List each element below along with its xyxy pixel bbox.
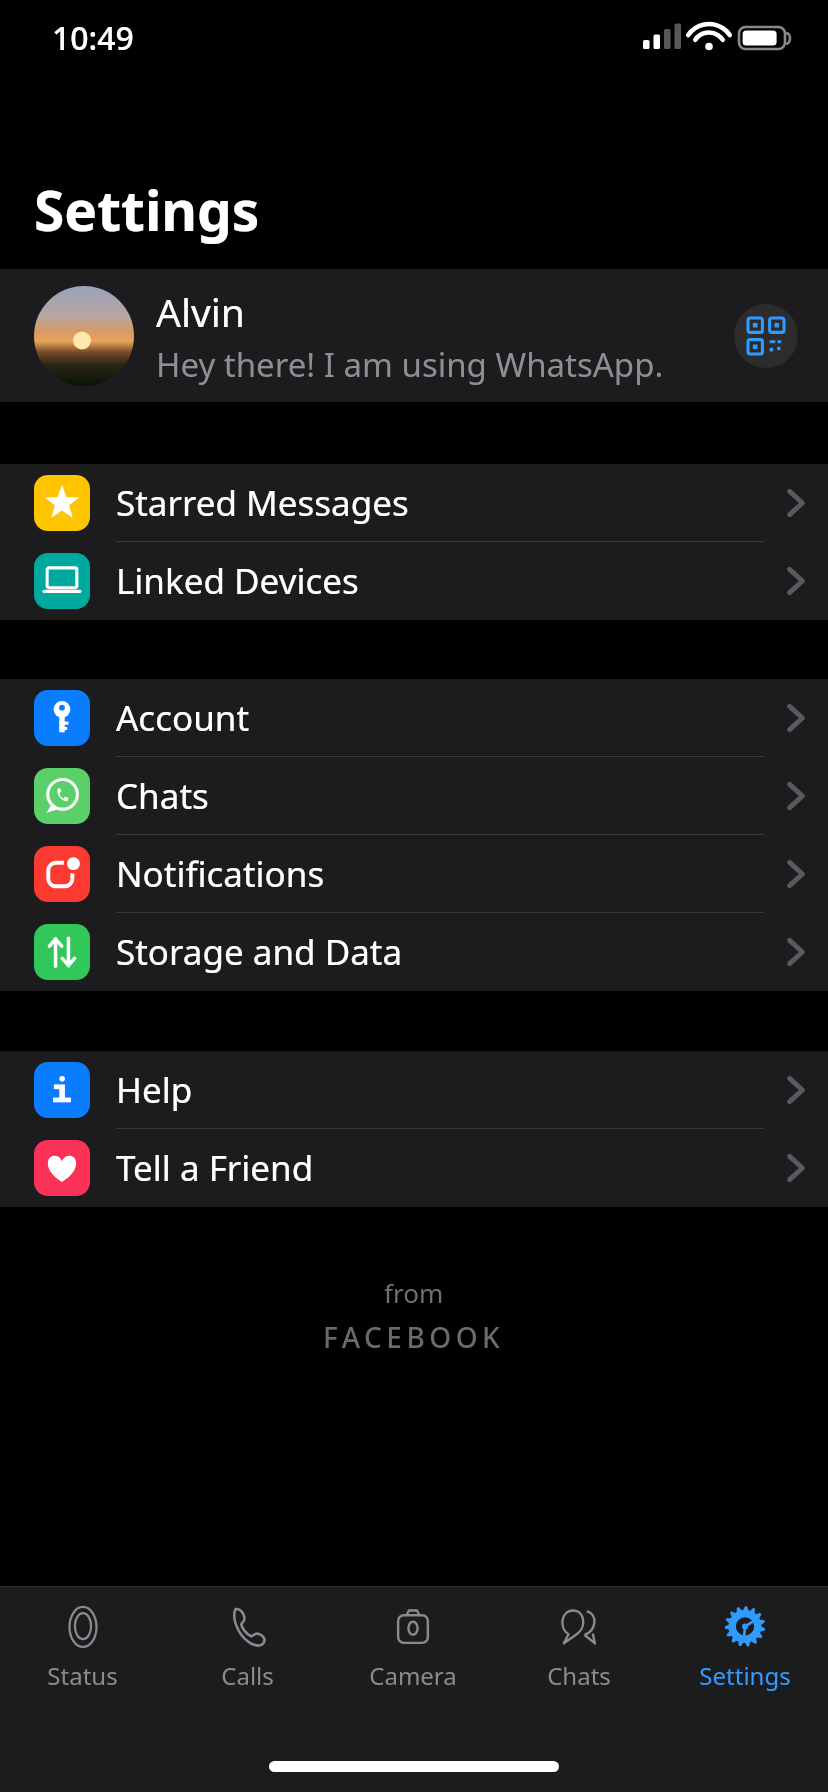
button[interactable]: Help — [0, 1051, 828, 1129]
staticText: Linked Devices — [116, 557, 359, 605]
button[interactable]: Account — [0, 679, 828, 757]
staticText: Hey there! I am using WhatsApp. — [156, 342, 664, 387]
button[interactable]: My QR code — [734, 304, 798, 368]
button[interactable]: Camera — [330, 1587, 496, 1703]
staticText: from — [384, 1275, 444, 1310]
staticText: Chats — [547, 1659, 611, 1692]
button[interactable]: Calls — [165, 1587, 330, 1703]
staticText: Starred Messages — [116, 479, 409, 527]
button[interactable]: Chats — [496, 1587, 662, 1703]
button[interactable]: Alvin — [0, 269, 828, 402]
button[interactable]: Settings — [662, 1587, 828, 1703]
staticText: Notifications — [116, 850, 325, 898]
button[interactable]: Tell a Friend — [0, 1129, 828, 1207]
staticText: FACEBOOK — [323, 1318, 505, 1356]
staticText: Account — [116, 694, 250, 742]
staticText: Settings — [699, 1659, 791, 1692]
staticText: Camera — [369, 1659, 457, 1692]
staticText: Chats — [116, 772, 209, 820]
button[interactable]: Linked Devices — [0, 542, 828, 620]
staticText: Status — [47, 1659, 118, 1692]
button[interactable]: Notifications — [0, 835, 828, 913]
button[interactable]: Chats — [0, 757, 828, 835]
staticText: Alvin — [156, 285, 245, 338]
button[interactable]: Starred Messages — [0, 464, 828, 542]
button[interactable]: Storage and Data — [0, 913, 828, 991]
staticText: Settings — [34, 172, 260, 247]
staticText: Storage and Data — [116, 928, 403, 976]
staticText: Tell a Friend — [116, 1144, 314, 1192]
staticText: 10:49 — [52, 16, 134, 60]
staticText: Help — [116, 1066, 193, 1114]
button[interactable]: Status — [0, 1587, 165, 1703]
staticText: Calls — [221, 1659, 274, 1692]
